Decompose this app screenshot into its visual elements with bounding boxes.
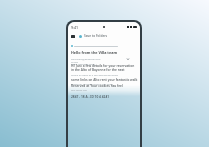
staticText: villa-team@example.com [71, 57, 101, 60]
staticText: Check in starts at 3 pm and we will send [71, 73, 118, 76]
staticText: 2847 - 18 A - ID 10 4 4241 [71, 95, 110, 99]
staticText: Hi! Just a few details for your reservat… [71, 64, 135, 68]
staticText: Save to Folders [84, 34, 108, 38]
staticText: Hello from the Villa team [71, 50, 117, 55]
staticText: in the Alto of Bayonne for the next [71, 68, 125, 72]
staticText: Reserved at Your cookies has feel [71, 84, 123, 88]
staticText: Please let us know should you need [71, 82, 113, 85]
staticText: to me [71, 60, 78, 63]
button[interactable]: Menu [71, 35, 75, 38]
button[interactable]: Expand details [126, 57, 130, 61]
staticText: any thing you [71, 88, 88, 91]
staticText: 9:41 [71, 25, 79, 30]
staticText: some links on Alto rent your fantastic w… [71, 78, 138, 82]
staticText: Good morning Javier, [71, 62, 96, 65]
button[interactable]: Save to Folders [79, 34, 108, 38]
